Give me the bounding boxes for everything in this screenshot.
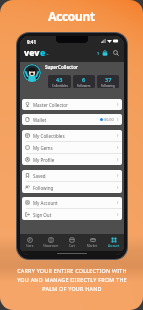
button[interactable]: My Collectibles: [22, 130, 122, 141]
button[interactable]: Master Collector: [22, 99, 122, 110]
staticText: Market: [87, 244, 98, 248]
button[interactable]: Showroom: [40, 234, 61, 251]
staticText: vev: [24, 47, 40, 59]
button[interactable]: Market: [82, 234, 103, 251]
staticText: Wallet: [33, 117, 47, 123]
button[interactable]: My Account: [22, 197, 122, 208]
button[interactable]: Saved: [22, 170, 122, 181]
staticText: SuperCollector: [45, 64, 79, 70]
button[interactable]: Cart: [61, 234, 82, 251]
staticText: My Account: [33, 200, 58, 206]
button[interactable]: [23, 64, 41, 82]
staticText: Saved: [33, 173, 46, 179]
staticText: Master Collector: [33, 102, 68, 108]
staticText: CARRY YOUR ENTIRE COLLECTION WITH YOU AN…: [17, 267, 127, 293]
staticText: Following: [33, 185, 54, 191]
button[interactable]: 43: [48, 75, 71, 88]
staticText: $0.00: [104, 117, 114, 122]
staticText: Store: [26, 244, 34, 248]
staticText: Cart: [69, 244, 75, 248]
staticText: Collectibles: [52, 84, 68, 88]
staticText: 6: [82, 76, 86, 83]
button[interactable]: Following: [22, 182, 122, 193]
staticText: Followers: [77, 84, 91, 88]
button[interactable]: Bag: [101, 49, 109, 57]
staticText: 9:41: [27, 39, 36, 45]
staticText: 1: [97, 51, 100, 56]
button[interactable]: My Profile: [22, 154, 122, 165]
staticText: Showroom: [43, 244, 59, 248]
button[interactable]: Account: [103, 234, 124, 251]
staticText: 43: [56, 76, 63, 83]
staticText: My Profile: [33, 157, 55, 163]
staticText: e: [40, 47, 46, 59]
staticText: Account: [108, 244, 120, 248]
button[interactable]: 6: [73, 75, 95, 88]
staticText: ™: [46, 53, 49, 57]
button[interactable]: Store: [20, 234, 40, 251]
button[interactable]: Sign Out: [22, 209, 122, 220]
staticText: Sign Out: [33, 212, 52, 218]
button[interactable]: 37: [97, 75, 119, 88]
button[interactable]: Wallet: [22, 114, 122, 125]
button[interactable]: Search: [112, 49, 120, 57]
staticText: Account: [48, 8, 95, 25]
staticText: Following: [101, 84, 115, 88]
staticText: My Gems: [33, 145, 53, 151]
staticText: My Collectibles: [33, 133, 65, 139]
button[interactable]: My Gems: [22, 142, 122, 153]
staticText: 37: [105, 76, 112, 83]
